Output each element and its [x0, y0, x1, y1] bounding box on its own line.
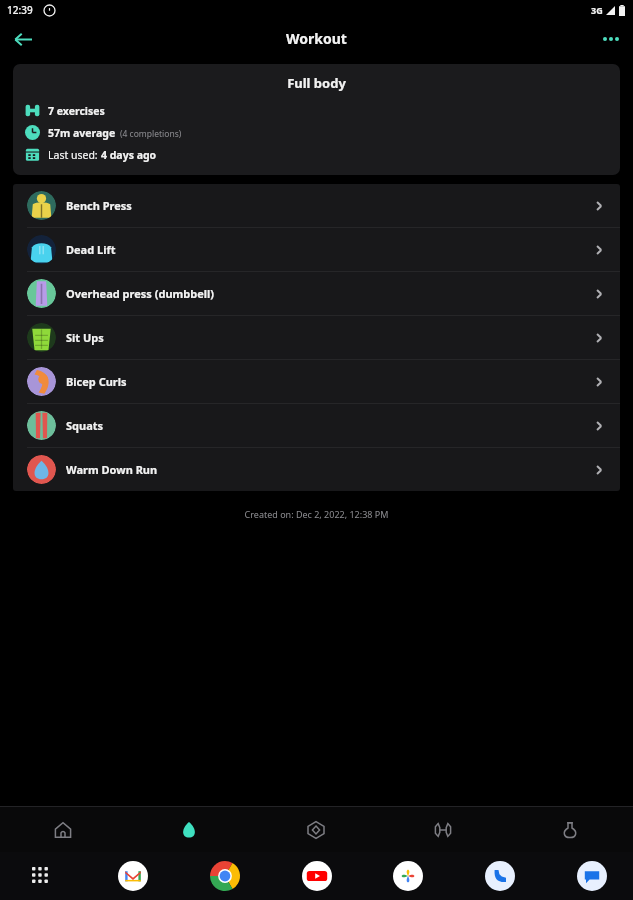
staticText: 12:39: [7, 3, 33, 17]
button[interactable]: Photos: [391, 859, 425, 893]
button[interactable]: Workouts: [379, 807, 506, 852]
staticText: 3G: [591, 4, 603, 16]
staticText: Last used:: [48, 148, 101, 162]
button[interactable]: Squats: [13, 404, 620, 447]
button[interactable]: Back: [6, 23, 38, 55]
staticText: Created on: Dec 2, 2022, 12:38 PM: [0, 508, 633, 520]
button[interactable]: Overhead press (dumbbell): [13, 272, 620, 315]
staticText: Warm Down Run: [66, 462, 158, 477]
button[interactable]: YouTube: [300, 859, 334, 893]
button[interactable]: Sit Ups: [13, 316, 620, 359]
button[interactable]: Hydration: [126, 807, 252, 852]
button[interactable]: All apps: [24, 859, 58, 893]
staticText: 4 days ago: [101, 148, 157, 162]
button[interactable]: Home: [0, 807, 126, 852]
button[interactable]: Bench Press: [13, 184, 620, 227]
staticText: (4 completions): [120, 128, 182, 140]
button[interactable]: Nutrition: [506, 807, 633, 852]
staticText: 57m average: [48, 126, 116, 140]
button[interactable]: Chrome: [208, 859, 242, 893]
button[interactable]: Messages: [575, 859, 609, 893]
staticText: Workout: [286, 29, 347, 48]
staticText: Bicep Curls: [66, 374, 127, 389]
button[interactable]: Gmail: [116, 859, 150, 893]
button[interactable]: Phone: [483, 859, 517, 893]
staticText: Squats: [66, 418, 104, 433]
staticText: Sit Ups: [66, 330, 104, 345]
button[interactable]: Bicep Curls: [13, 360, 620, 403]
button[interactable]: Dead Lift: [13, 228, 620, 271]
button[interactable]: Warm Down Run: [13, 448, 620, 491]
button[interactable]: Profile: [252, 807, 379, 852]
staticText: Full body: [13, 74, 620, 92]
staticText: Dead Lift: [66, 242, 116, 257]
button[interactable]: Full body: [13, 64, 620, 175]
button[interactable]: More options: [596, 24, 626, 54]
staticText: Overhead press (dumbbell): [66, 286, 215, 301]
staticText: 7 exercises: [48, 104, 105, 118]
staticText: Bench Press: [66, 198, 132, 213]
